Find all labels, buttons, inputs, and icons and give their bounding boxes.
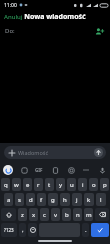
staticText: s [18,196,21,204]
button[interactable]: g [48,193,58,206]
staticText: GIF [35,167,43,173]
staticText: , [22,226,24,234]
button[interactable]: Mikrofon [97,165,107,175]
staticText: l [100,196,102,204]
button[interactable]: Anuluj [0,11,27,23]
button[interactable]: n [73,208,82,221]
button[interactable]: s [15,193,24,206]
staticText: x [32,211,36,219]
button[interactable]: Dodaj kontakt [94,26,105,37]
button[interactable]: u [67,178,76,191]
staticText: Nowa wiadomość [24,12,86,22]
button[interactable]: p [100,178,109,191]
staticText: Do: [5,27,15,35]
button[interactable]: m [84,208,93,221]
staticText: . [85,226,87,234]
button[interactable]: f [37,193,46,206]
button[interactable]: Google [3,165,13,175]
button[interactable]: k [84,193,94,206]
button[interactable]: ?123 [1,223,17,237]
button[interactable]: w [12,178,21,191]
button[interactable]: a [4,193,13,206]
staticText: ?123 [4,227,14,233]
button[interactable]: Więcej [81,166,91,174]
staticText: e [26,181,30,189]
button[interactable]: Enter [91,223,109,237]
staticText: a [7,196,11,204]
button[interactable]: . [82,223,89,237]
button[interactable]: Dodaj załącznik [4,146,106,159]
button[interactable]: q [1,178,10,191]
button[interactable]: Backspace [95,208,109,221]
button[interactable]: o [89,178,98,191]
staticText: Wiadomość [18,149,49,156]
staticText: f [40,196,43,204]
button[interactable]: Emoji [28,223,37,237]
button[interactable]: c [40,208,49,221]
staticText: r [37,181,40,189]
button[interactable]: z [18,208,27,221]
button[interactable]: e [23,178,32,191]
staticText: v [54,211,58,219]
button[interactable]: Dodaj załącznik [7,148,16,157]
button[interactable]: Ustawienia [66,165,76,175]
staticText: k [87,196,91,204]
staticText: 11:00 [4,2,17,9]
staticText: q [4,181,8,189]
staticText: t [48,181,51,189]
staticText: h [63,196,67,204]
button[interactable]: y [56,178,65,191]
button[interactable]: d [26,193,35,206]
button[interactable]: r [34,178,43,191]
button[interactable]: Emoji [19,165,29,175]
button[interactable]: Schowek [50,165,60,175]
button[interactable]: h [60,193,70,206]
staticText: z [21,211,24,219]
staticText: g [51,196,55,204]
button[interactable]: GIF [34,167,44,173]
staticText: w [14,181,19,189]
button[interactable]: v [51,208,60,221]
staticText: u [70,181,74,189]
button[interactable]: Shift [1,208,16,221]
staticText: i [82,181,84,189]
button[interactable]: l [96,193,106,206]
button[interactable]: b [62,208,71,221]
staticText: n [76,211,80,219]
staticText: m [86,211,92,219]
staticText: y [59,181,63,189]
staticText: o [92,181,96,189]
button[interactable]: Wyślij [94,148,103,157]
staticText: Anuluj [4,13,23,21]
staticText: d [29,196,33,204]
staticText: p [103,181,107,189]
staticText: j [76,196,78,204]
staticText: c [43,211,46,219]
button[interactable]: t [45,178,54,191]
button[interactable]: Do: [0,24,110,38]
button[interactable]: i [78,178,87,191]
button[interactable]: j [72,193,82,206]
button[interactable]: , [19,223,26,237]
staticText: b [65,211,69,219]
button[interactable]: x [29,208,38,221]
